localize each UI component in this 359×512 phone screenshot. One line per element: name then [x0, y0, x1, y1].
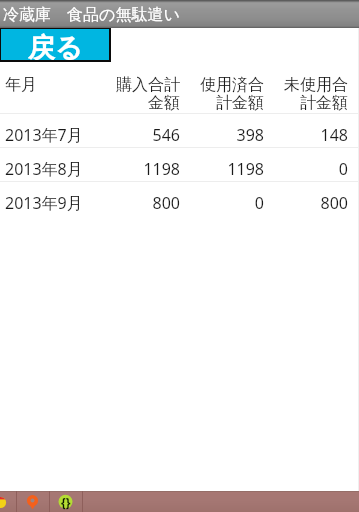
staticText: 1198 — [196, 158, 264, 180]
staticText: 年月 — [5, 75, 112, 95]
staticText: 未使用合 計金額 — [280, 75, 348, 113]
staticText: 2013年9月 — [5, 192, 112, 214]
staticText: 148 — [280, 124, 348, 146]
staticText: 2013年8月 — [5, 158, 112, 180]
staticText: 546 — [112, 124, 180, 146]
staticText: 0 — [196, 192, 264, 214]
staticText: 800 — [112, 192, 180, 214]
staticText: 398 — [196, 124, 264, 146]
button[interactable]: 戻る — [0, 28, 111, 62]
staticText: 0 — [280, 158, 348, 180]
staticText: 冷蔵庫 食品の無駄遣い — [3, 3, 180, 25]
staticText: 1198 — [112, 158, 180, 180]
staticText: 戻る — [28, 31, 83, 60]
button[interactable]: Notification — [0, 491, 16, 512]
button[interactable]: Developer options — [50, 491, 82, 512]
button[interactable]: Location — [17, 491, 49, 512]
staticText: 2013年7月 — [5, 124, 112, 146]
staticText: 使用済合 計金額 — [196, 75, 264, 113]
staticText: 購入合計 金額 — [112, 75, 180, 113]
staticText: 800 — [280, 192, 348, 214]
staticText: {} — [61, 494, 71, 510]
